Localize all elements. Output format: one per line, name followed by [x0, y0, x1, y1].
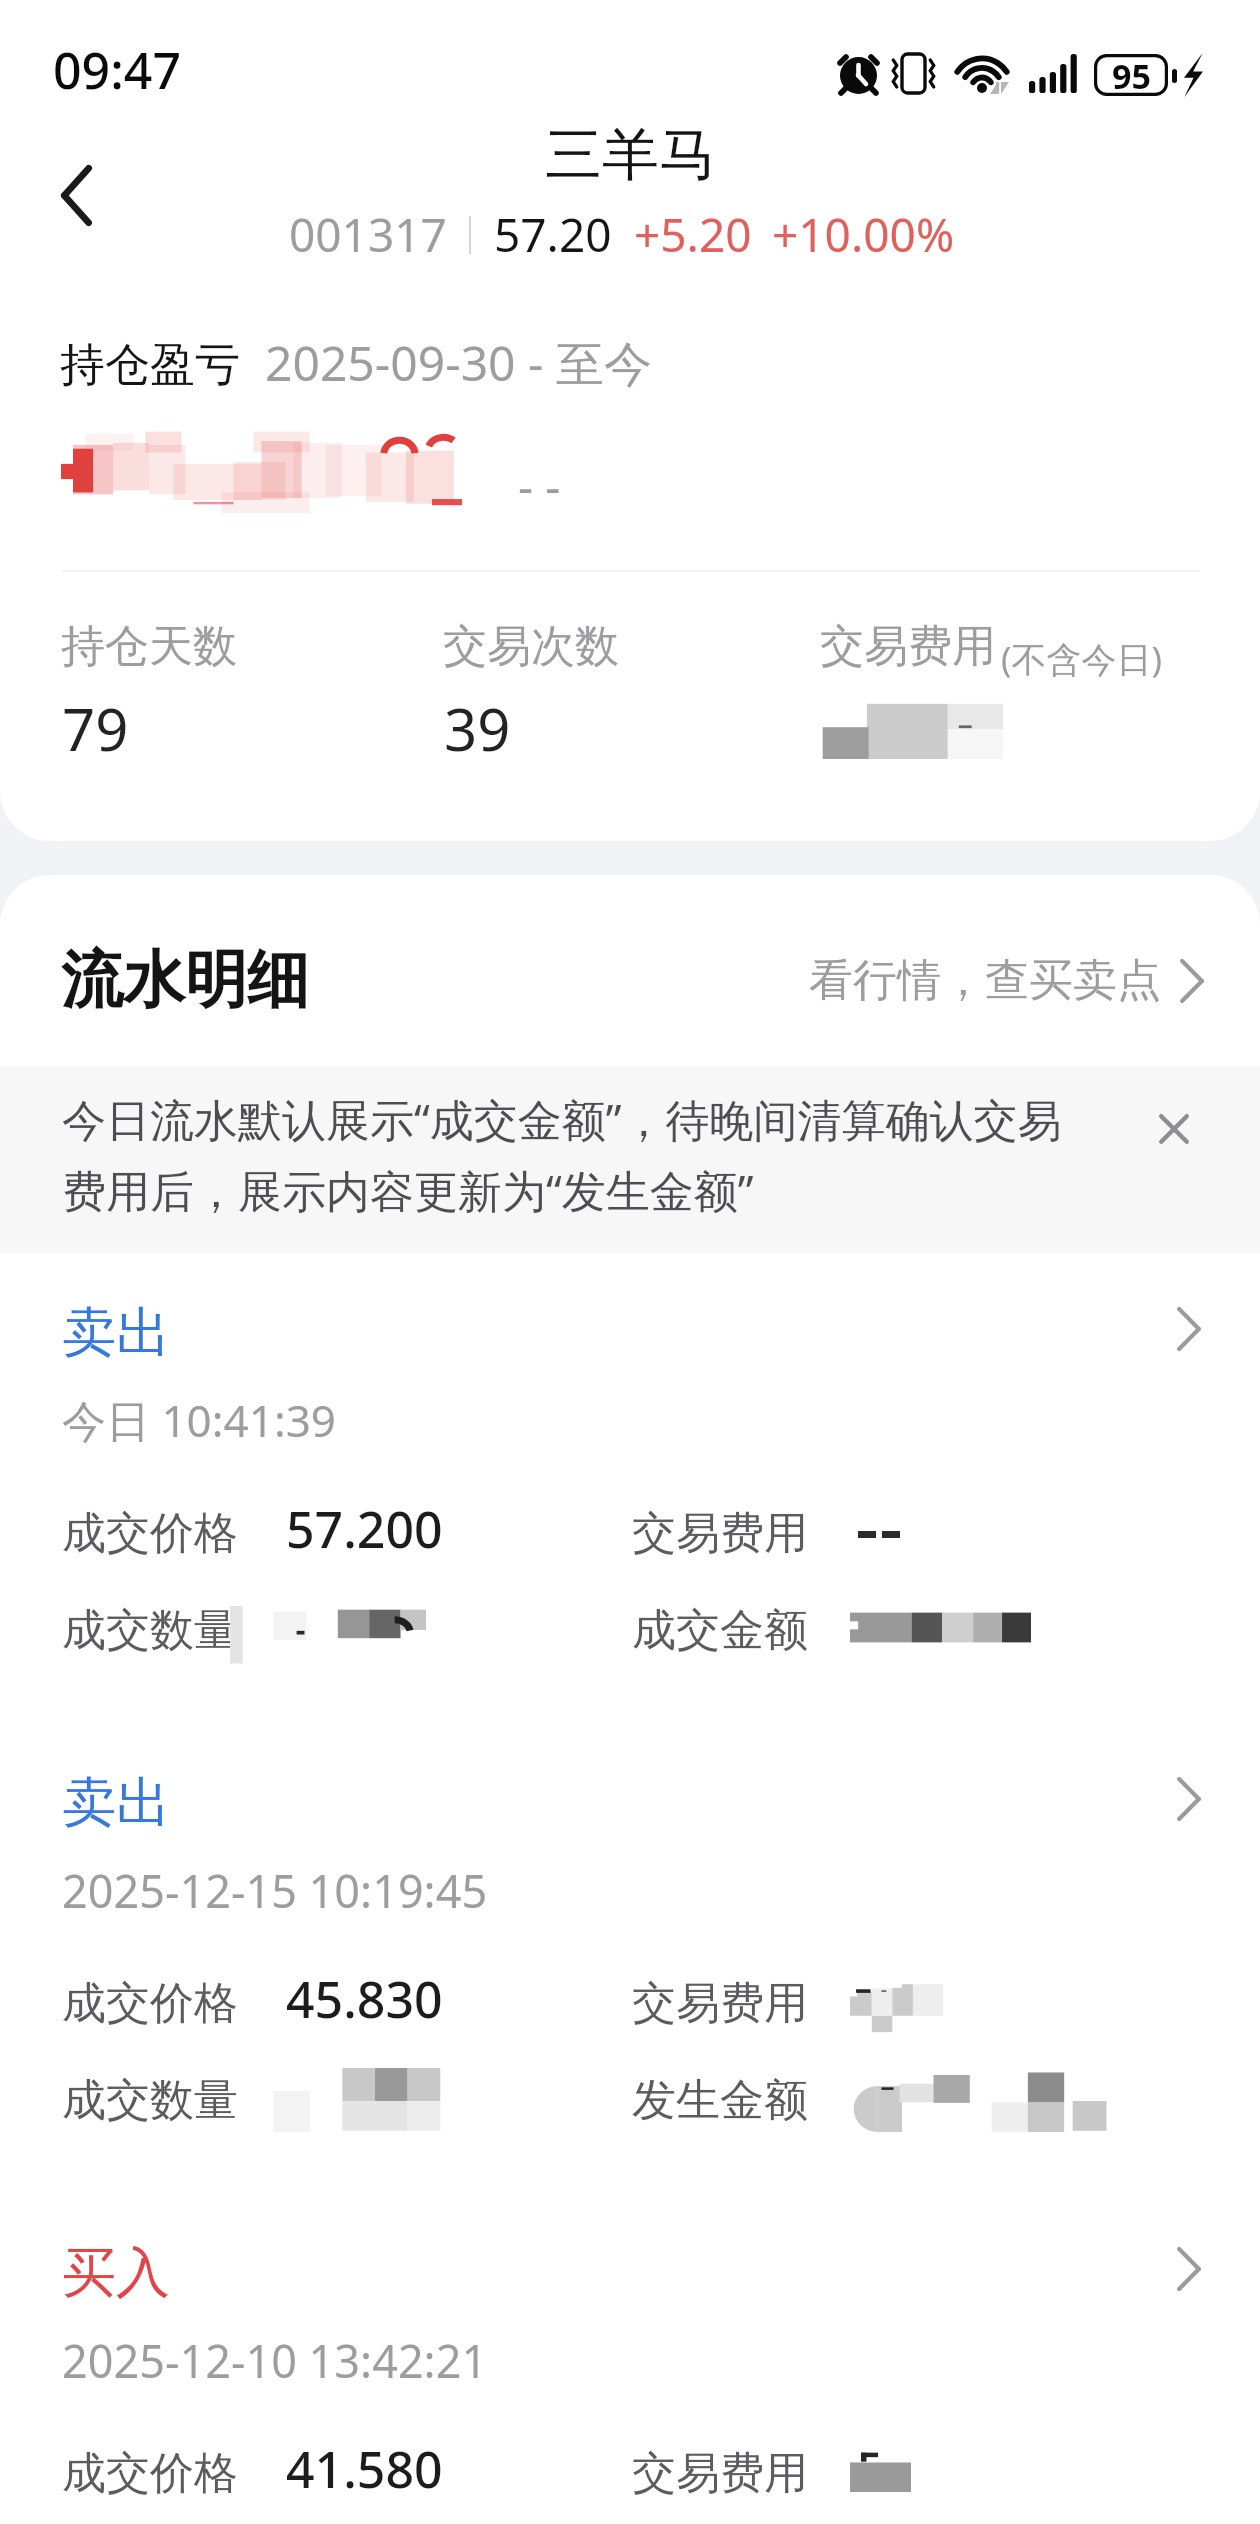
staticText: 41.580 [286, 2435, 443, 2503]
staticText: 持仓天数 [61, 619, 237, 674]
staticText: 交易次数 [443, 619, 619, 674]
staticText: 39 [444, 689, 511, 768]
staticText: 今日 10:41:39 [62, 1390, 337, 1450]
button[interactable]: Back [33, 152, 119, 238]
button[interactable]: 看行情，查买卖点 [809, 953, 1204, 1008]
staticText: 2025-12-10 13:42:21 [62, 2330, 488, 2391]
staticText: 看行情，查买卖点 [809, 953, 1161, 1008]
staticText: 成交价格 [62, 1506, 238, 1561]
staticText: 成交数量 [62, 1603, 238, 1658]
staticText: 57.20 [494, 203, 612, 266]
staticText: 今日流水默认展示“成交金额”，待晚间清算确认交易 [62, 1089, 1062, 1149]
staticText: 交易费用 [632, 1976, 808, 2031]
staticText: 57.200 [286, 1495, 443, 1563]
staticText: 001317 [289, 203, 447, 266]
button[interactable]: 卖出 [0, 1263, 1260, 1693]
staticText: 成交金额 [632, 1603, 808, 1658]
staticText: 45.830 [286, 1965, 443, 2033]
staticText: 09:47 [53, 36, 181, 104]
staticText: +5.20 [634, 203, 752, 266]
staticText: 成交价格 [62, 2446, 238, 2501]
button[interactable]: 买入 [0, 2203, 1260, 2453]
staticText: 成交价格 [62, 1976, 238, 2031]
staticText: - - [518, 454, 561, 518]
staticText: 成交数量 [62, 2073, 238, 2128]
staticText: 买入 [62, 2239, 170, 2307]
staticText: 发生金额 [632, 2073, 808, 2128]
staticText: 费用后，展示内容更新为“发生金额” [62, 1160, 754, 1220]
staticText: 交易费用 [632, 1506, 808, 1561]
staticText: 持仓盈亏 [60, 337, 240, 394]
staticText: 2025-09-30 - 至今 [265, 330, 652, 396]
staticText: 流水明细 [61, 941, 309, 1019]
staticText: 卖出 [62, 1769, 170, 1837]
staticText: (不含今日) [1001, 635, 1163, 683]
staticText: 卖出 [62, 1299, 170, 1367]
staticText: +10.00% [772, 203, 955, 266]
button[interactable]: 卖出 [0, 1733, 1260, 2163]
staticText: 交易费用 [632, 2446, 808, 2501]
staticText: 交易费用 [820, 619, 996, 674]
staticText: 2025-12-15 10:19:45 [62, 1860, 488, 1921]
staticText: 三羊马 [545, 119, 716, 191]
button[interactable]: Close notice [1131, 1086, 1217, 1172]
staticText: 79 [62, 689, 129, 768]
staticText: 95 [1112, 53, 1151, 95]
